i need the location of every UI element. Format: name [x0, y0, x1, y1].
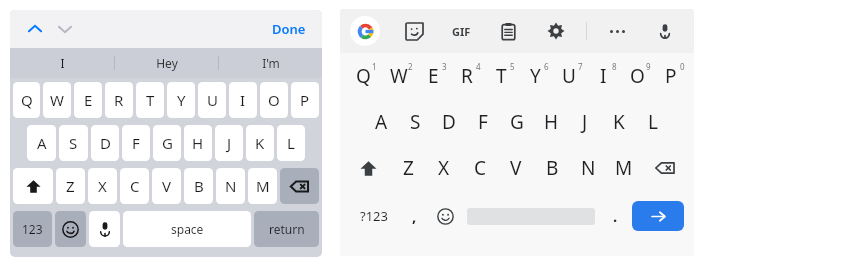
button[interactable]: Q — [346, 53, 381, 99]
button[interactable]: space — [123, 211, 251, 247]
button[interactable]: F — [122, 125, 150, 161]
button[interactable]: V — [152, 168, 181, 204]
button[interactable]: J — [215, 125, 243, 161]
button[interactable]: V — [498, 145, 534, 191]
staticText: J — [227, 133, 232, 153]
staticText: G — [510, 109, 524, 135]
button[interactable]: Y — [167, 82, 195, 118]
button[interactable]: N — [216, 168, 245, 204]
staticText: I — [600, 63, 607, 89]
button[interactable]: J — [568, 99, 602, 145]
staticText: Q — [21, 90, 33, 110]
button[interactable]: Settings — [541, 16, 571, 46]
button[interactable]: S — [59, 125, 88, 161]
staticText: B — [194, 176, 204, 196]
button[interactable]: Backspace — [642, 145, 688, 191]
button[interactable] — [462, 191, 600, 241]
staticText: P — [665, 63, 677, 89]
button[interactable]: Y — [518, 53, 552, 99]
button[interactable]: return — [254, 211, 319, 247]
button[interactable]: I — [229, 82, 257, 118]
button[interactable]: F — [466, 99, 500, 145]
button[interactable]: K — [602, 99, 636, 145]
button[interactable]: G — [153, 125, 181, 161]
button[interactable]: X — [426, 145, 462, 191]
button[interactable]: H — [184, 125, 212, 161]
staticText: 123 — [22, 221, 43, 237]
button[interactable]: N — [570, 145, 606, 191]
button[interactable]: R — [105, 82, 133, 118]
staticText: S — [69, 133, 78, 153]
button[interactable]: S — [398, 99, 432, 145]
button[interactable]: D — [91, 125, 119, 161]
staticText: Q — [356, 63, 371, 89]
button[interactable]: K — [246, 125, 274, 161]
button[interactable]: Stickers — [399, 16, 429, 46]
button[interactable]: H — [534, 99, 568, 145]
button[interactable]: I — [10, 48, 114, 78]
button[interactable]: P — [654, 53, 688, 99]
button[interactable]: Dictation — [89, 211, 120, 247]
button[interactable]: ?123 — [348, 191, 400, 241]
button[interactable]: I'm — [219, 48, 322, 78]
button[interactable]: GIF — [448, 20, 475, 43]
button[interactable]: B — [534, 145, 570, 191]
button[interactable]: 123 — [13, 211, 52, 247]
button[interactable]: Done — [270, 16, 308, 42]
button[interactable]: G — [500, 99, 534, 145]
button[interactable]: A — [27, 125, 56, 161]
staticText: M — [256, 176, 270, 196]
button[interactable]: Z — [56, 168, 85, 204]
button[interactable]: Delete — [280, 168, 319, 204]
button[interactable]: T — [136, 82, 164, 118]
staticText: I'm — [262, 55, 280, 71]
button[interactable]: I — [586, 53, 620, 99]
button[interactable]: Next field — [54, 18, 76, 40]
staticText: J — [582, 109, 588, 135]
button[interactable]: O — [260, 82, 288, 118]
button[interactable]: Voice input — [650, 16, 680, 46]
button[interactable]: A — [364, 99, 398, 145]
button[interactable]: B — [184, 168, 213, 204]
button[interactable]: Shift — [346, 145, 391, 191]
button[interactable]: U — [552, 53, 586, 99]
button[interactable]: Shift — [13, 168, 53, 204]
button[interactable]: Previous field — [24, 18, 46, 40]
button[interactable]: O — [620, 53, 654, 99]
button[interactable]: Q — [13, 82, 40, 118]
button[interactable]: Clipboard — [493, 16, 523, 46]
button[interactable]: C — [462, 145, 498, 191]
button[interactable]: C — [120, 168, 149, 204]
staticText: U — [562, 63, 576, 89]
staticText: E — [84, 90, 93, 110]
button[interactable]: Emoji — [55, 211, 86, 247]
button[interactable]: Hey — [115, 48, 218, 78]
button[interactable]: W — [381, 53, 416, 99]
button[interactable]: U — [198, 82, 226, 118]
button[interactable]: Z — [391, 145, 426, 191]
button[interactable]: T — [484, 53, 518, 99]
button[interactable]: . — [600, 191, 630, 241]
button[interactable]: L — [636, 99, 670, 145]
button[interactable]: D — [432, 99, 466, 145]
button[interactable]: Enter — [632, 201, 684, 231]
button[interactable]: L — [277, 125, 305, 161]
staticText: A — [37, 133, 47, 153]
button[interactable]: R — [450, 53, 484, 99]
button[interactable]: , — [400, 191, 429, 241]
button[interactable]: M — [248, 168, 277, 204]
button[interactable]: Google search — [350, 16, 380, 46]
button[interactable]: Emoji — [429, 191, 462, 241]
button[interactable]: More options — [602, 16, 632, 46]
button[interactable]: E — [416, 53, 450, 99]
staticText: S — [410, 109, 421, 135]
button[interactable]: M — [606, 145, 642, 191]
button[interactable]: W — [43, 82, 71, 118]
staticText: G — [162, 133, 173, 153]
staticText: I — [240, 90, 246, 110]
button[interactable]: X — [88, 168, 117, 204]
staticText: K — [255, 133, 265, 153]
staticText: F — [132, 133, 140, 153]
button[interactable]: E — [74, 82, 102, 118]
button[interactable]: P — [291, 82, 319, 118]
